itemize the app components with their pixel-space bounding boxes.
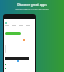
staticText: Browse millions of apps and games (15, 8, 49, 11)
staticText: Discover great apps (17, 3, 47, 7)
